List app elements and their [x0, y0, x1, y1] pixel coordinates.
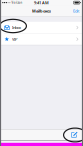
- staticText: Inbox: [12, 25, 21, 30]
- button[interactable]: Compose: [69, 129, 80, 140]
- staticText: Verizon: [12, 1, 23, 4]
- staticText: Mailboxes: [32, 8, 51, 13]
- staticText: Edit: [73, 8, 79, 13]
- button[interactable]: VIP: [0, 33, 83, 45]
- button[interactable]: Inbox: [0, 22, 83, 33]
- staticText: 9:41 AM: [34, 0, 49, 5]
- button[interactable]: Edit: [71, 5, 81, 16]
- staticText: VIP: [12, 36, 17, 42]
